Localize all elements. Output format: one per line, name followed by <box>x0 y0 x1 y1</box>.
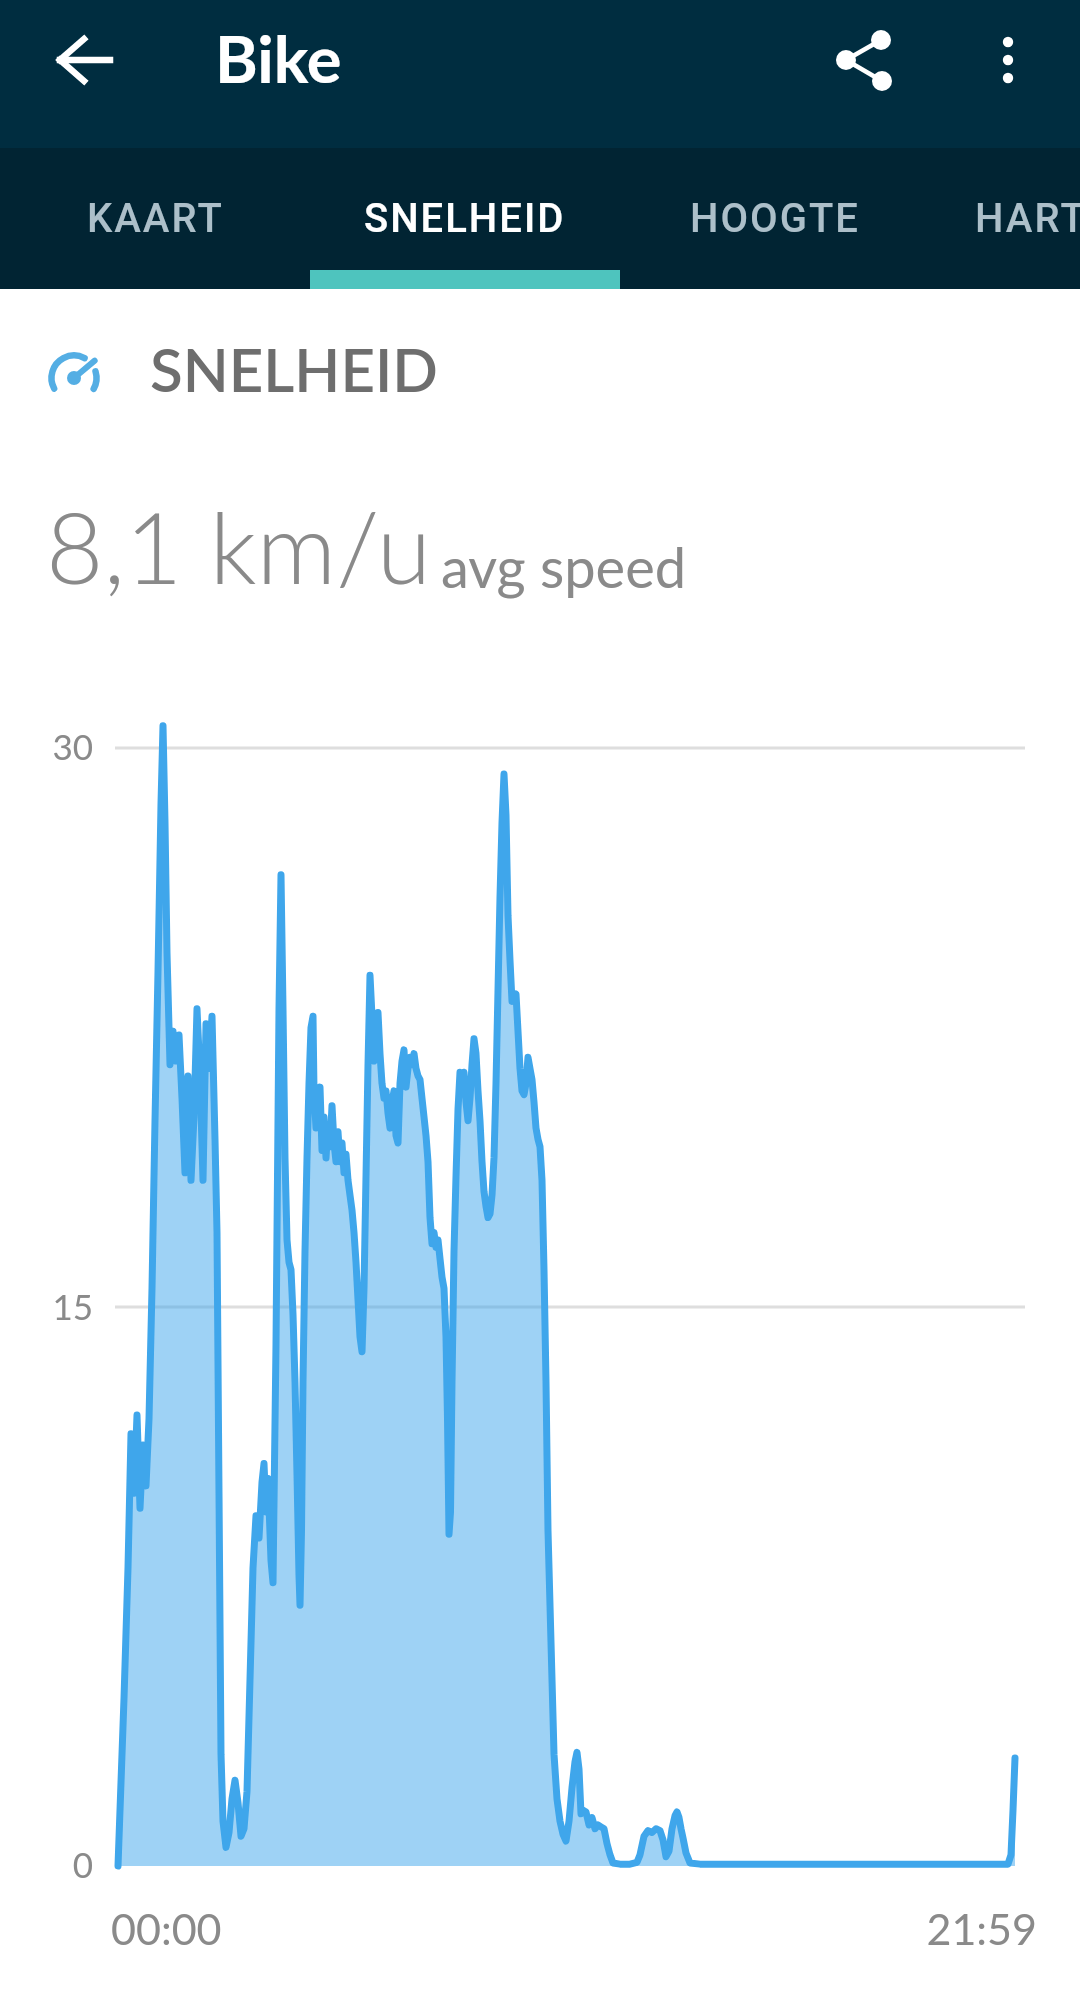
staticText: avg speed <box>441 533 687 600</box>
button[interactable] <box>962 12 1054 108</box>
staticText: 15 <box>52 1285 93 1327</box>
staticText: HOOGTE <box>690 195 860 242</box>
button[interactable]: KAART <box>0 148 310 289</box>
staticText: SNELHEID <box>150 333 438 405</box>
staticText: 0 <box>72 1843 93 1885</box>
staticText: SNELHEID <box>364 195 566 242</box>
button[interactable]: HOOGTE <box>620 148 930 289</box>
staticText: 8,1 km/u <box>46 486 432 605</box>
button[interactable]: SNELHEID <box>310 148 620 289</box>
staticText: Bike <box>215 19 342 97</box>
button[interactable] <box>40 12 130 108</box>
staticText: 00:00 <box>111 1903 222 1955</box>
button[interactable]: HARTSLAG <box>930 148 1080 289</box>
staticText: HARTSLAG <box>975 195 1080 242</box>
staticText: KAART <box>87 195 224 242</box>
staticText: 21:59 <box>926 1903 1037 1955</box>
button[interactable] <box>810 12 918 108</box>
staticText: 30 <box>52 725 93 767</box>
